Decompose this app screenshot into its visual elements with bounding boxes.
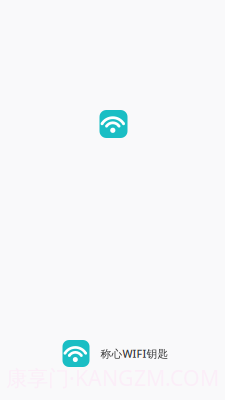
staticText: 称心WIFI钥匙 — [100, 346, 168, 361]
staticText: 康享门·KANGZM.COM — [6, 364, 219, 392]
button[interactable]: 称心WIFI钥匙 — [99, 110, 127, 138]
button[interactable]: 称心WIFI钥匙 — [59, 340, 165, 367]
